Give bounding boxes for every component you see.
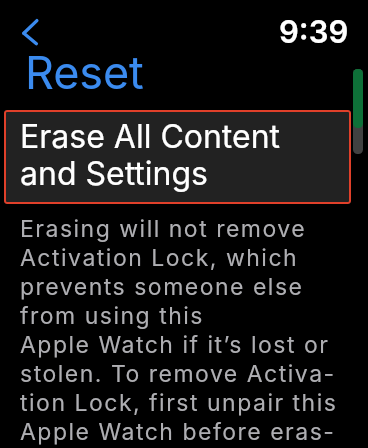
staticText: 9:39: [279, 15, 349, 50]
staticText: Reset: [25, 48, 144, 99]
staticText: Erasing will not remove Activation Lock,…: [20, 214, 338, 446]
button[interactable]: Back: [14, 12, 52, 50]
staticText: Erase All Content and Settings: [20, 118, 281, 192]
button[interactable]: Erase All Content and Settings: [4, 110, 351, 204]
